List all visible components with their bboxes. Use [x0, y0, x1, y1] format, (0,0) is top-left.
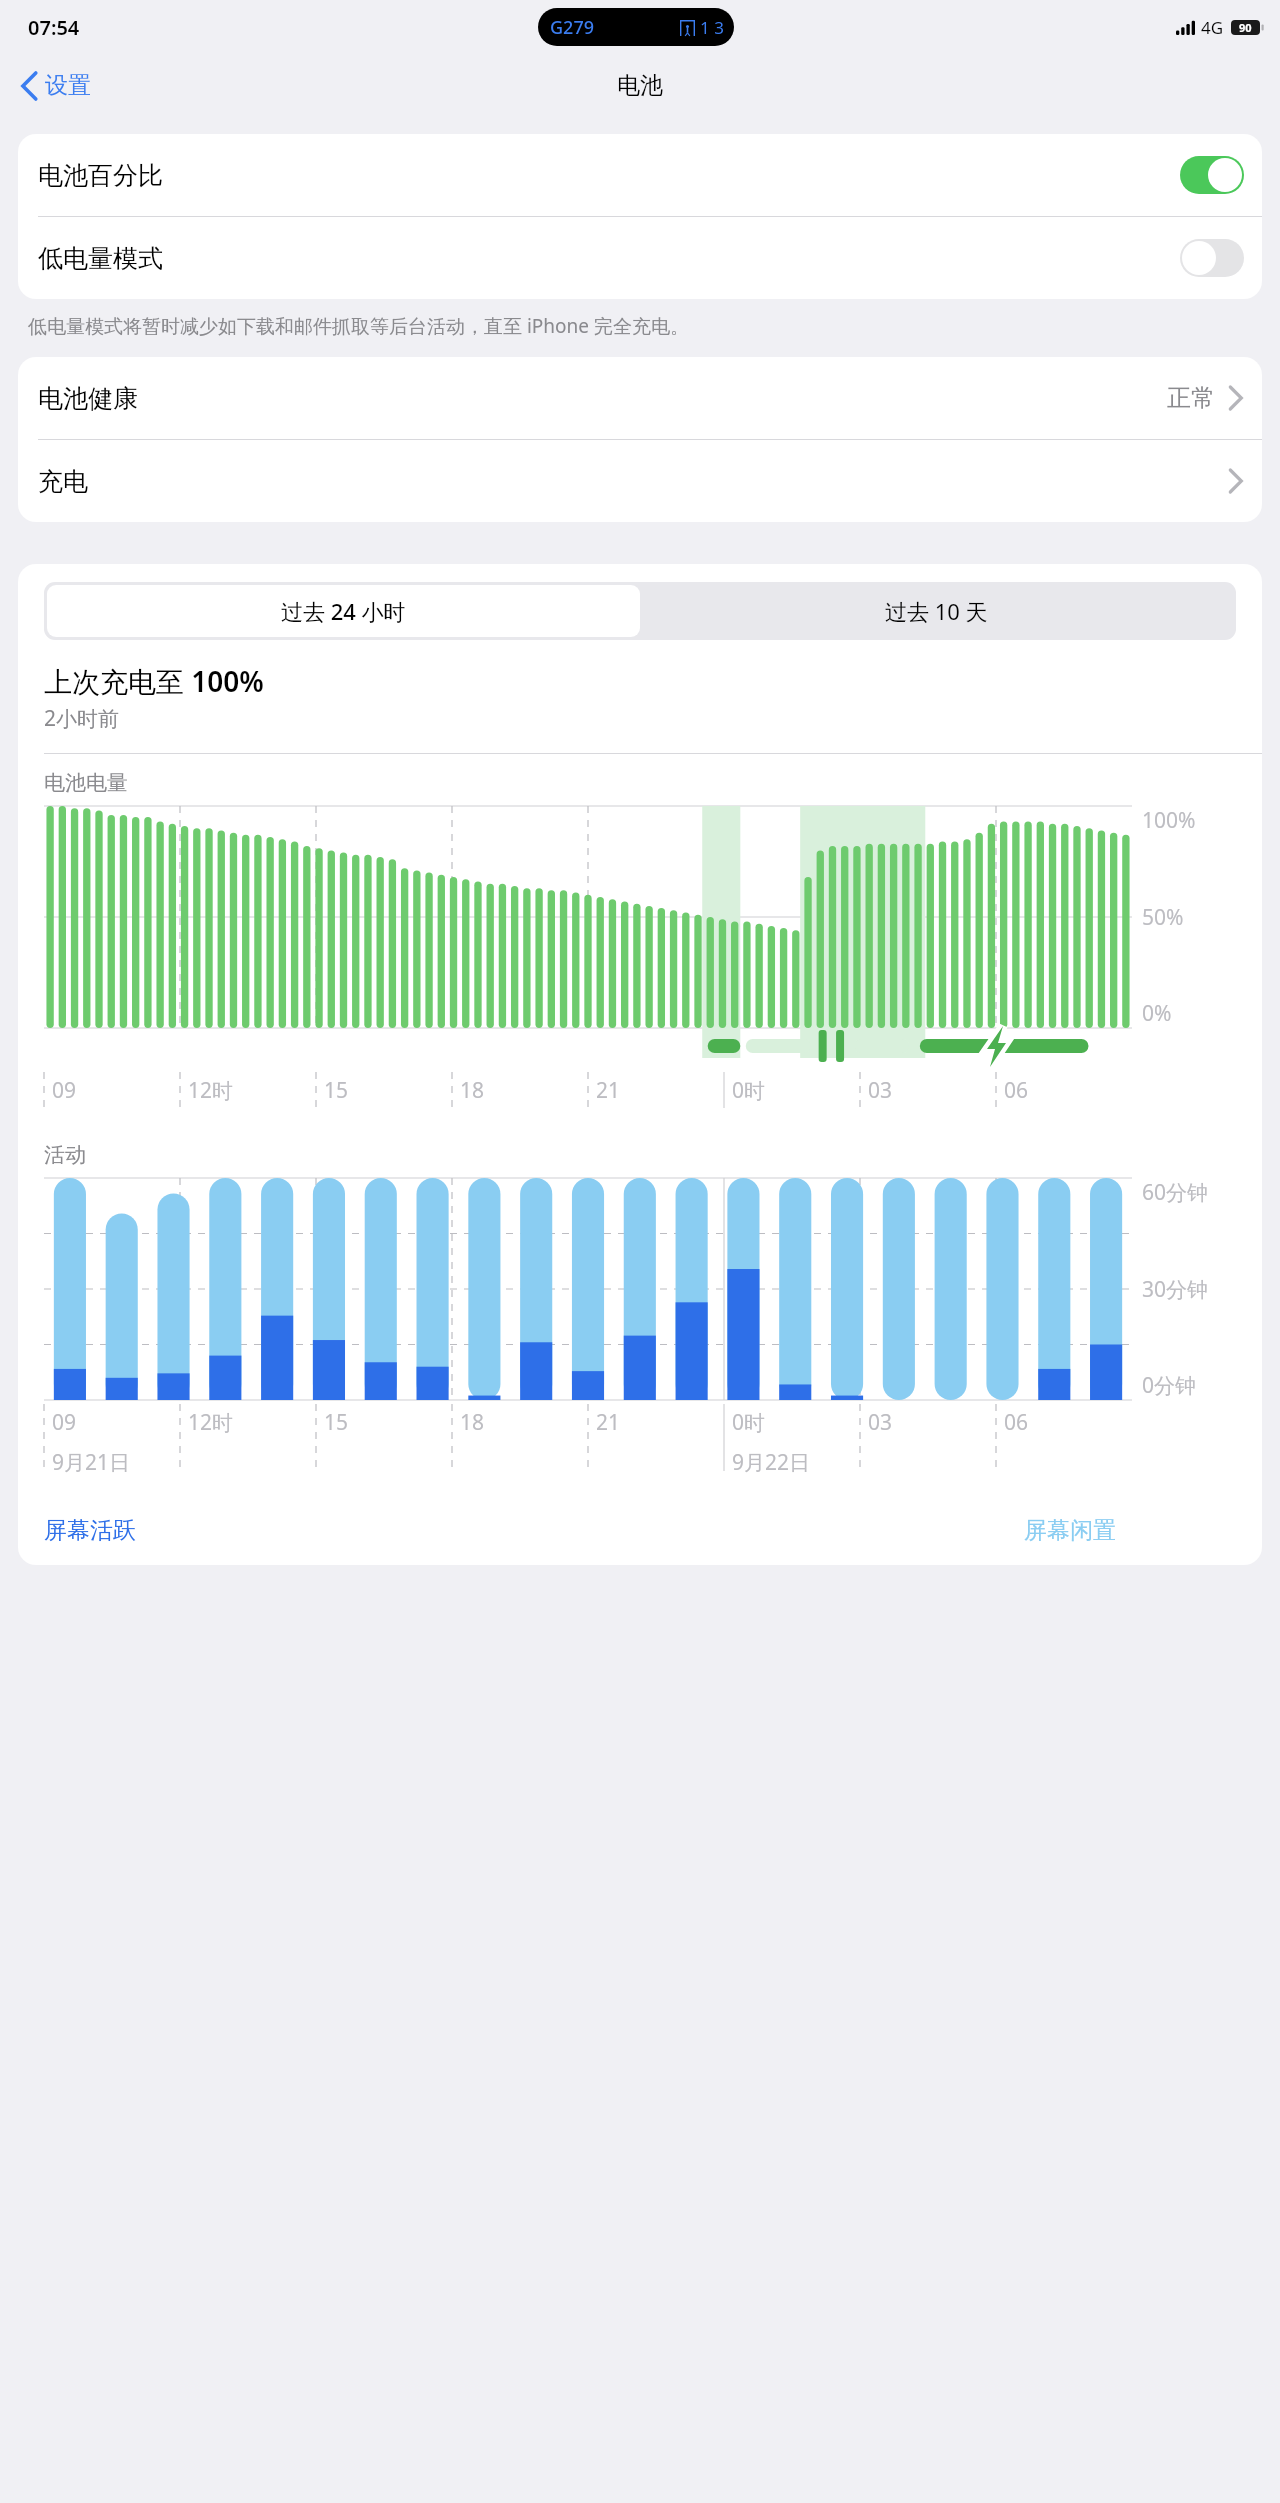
- staticText: 03: [868, 1076, 893, 1105]
- staticText: 0%: [1142, 999, 1172, 1028]
- button[interactable]: 设置: [14, 65, 99, 106]
- button[interactable]: On: [1180, 156, 1244, 194]
- staticText: 03: [868, 1408, 893, 1437]
- staticText: 电池健康: [38, 383, 138, 414]
- staticText: 18: [460, 1408, 485, 1437]
- staticText: 9月21日: [52, 1448, 131, 1477]
- staticText: 过去 10 天: [885, 596, 988, 626]
- staticText: 15: [324, 1408, 349, 1437]
- staticText: 设置: [45, 71, 91, 100]
- staticText: 低电量模式: [38, 243, 163, 274]
- staticText: 60分钟: [1142, 1178, 1209, 1207]
- staticText: 09: [52, 1076, 77, 1105]
- staticText: 0分钟: [1142, 1371, 1197, 1400]
- button[interactable]: 过去 10 天: [640, 585, 1233, 637]
- button[interactable]: 电池百分比: [18, 134, 1262, 216]
- staticText: 09: [52, 1408, 77, 1437]
- staticText: 21: [596, 1408, 621, 1437]
- staticText: 电池: [617, 71, 663, 100]
- staticText: 屏幕闲置: [1024, 1516, 1116, 1545]
- button[interactable]: Off: [1180, 239, 1244, 277]
- staticText: 0时: [732, 1408, 766, 1437]
- staticText: 06: [1004, 1076, 1029, 1105]
- staticText: 06: [1004, 1408, 1029, 1437]
- staticText: 50%: [1142, 903, 1184, 932]
- staticText: 100%: [1142, 806, 1196, 835]
- button[interactable]: 低电量模式: [18, 217, 1262, 299]
- staticText: 18: [460, 1076, 485, 1105]
- staticText: 低电量模式将暂时减少如下载和邮件抓取等后台活动，直至 iPhone 完全充电。: [28, 313, 689, 339]
- staticText: 充电: [38, 466, 88, 497]
- staticText: 9月22日: [732, 1448, 811, 1477]
- staticText: 21: [596, 1076, 621, 1105]
- staticText: 90: [1239, 20, 1252, 35]
- staticText: 0时: [732, 1076, 766, 1105]
- staticText: 电池百分比: [38, 160, 163, 191]
- staticText: 上次充电至 100%: [44, 662, 264, 700]
- staticText: G279: [550, 15, 594, 40]
- staticText: 07:54: [28, 14, 80, 41]
- staticText: 电池电量: [44, 770, 128, 796]
- staticText: 屏幕活跃: [44, 1516, 136, 1545]
- button[interactable]: 过去 24 小时: [47, 585, 640, 637]
- staticText: 4G: [1201, 16, 1224, 39]
- staticText: 2小时前: [44, 704, 120, 733]
- staticText: 12时: [188, 1408, 234, 1437]
- button[interactable]: 电池健康: [18, 357, 1262, 439]
- staticText: 过去 24 小时: [281, 596, 406, 626]
- staticText: 正常: [1167, 383, 1215, 413]
- staticText: 30分钟: [1142, 1275, 1209, 1304]
- staticText: 1 3: [700, 16, 724, 39]
- staticText: 活动: [44, 1142, 86, 1168]
- staticText: 12时: [188, 1076, 234, 1105]
- staticText: 15: [324, 1076, 349, 1105]
- button[interactable]: 充电: [18, 440, 1262, 522]
